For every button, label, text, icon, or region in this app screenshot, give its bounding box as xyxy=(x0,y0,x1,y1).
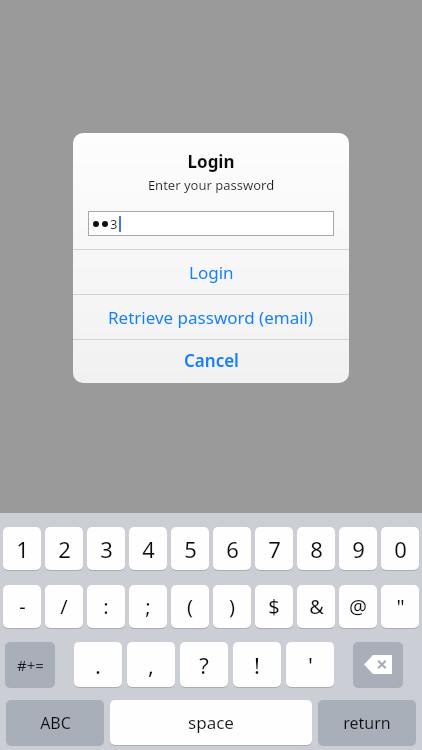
button[interactable]: 9 xyxy=(339,527,377,570)
staticText: Login xyxy=(189,261,234,284)
button[interactable]: 6 xyxy=(213,527,251,570)
button[interactable]: space xyxy=(110,700,312,745)
button[interactable]: ? xyxy=(180,642,228,687)
button[interactable]: Login xyxy=(73,250,349,294)
staticText: $ xyxy=(268,593,280,620)
button[interactable]: 5 xyxy=(171,527,209,570)
staticText: - xyxy=(19,593,26,620)
button[interactable]: 3 xyxy=(88,211,334,236)
staticText: ? xyxy=(199,650,209,680)
button[interactable]: 3 xyxy=(87,527,125,570)
button[interactable]: . xyxy=(74,642,122,687)
staticText: 5 xyxy=(184,534,197,564)
button[interactable]: ) xyxy=(213,585,251,628)
button[interactable]: Retrieve password (email) xyxy=(73,295,349,339)
staticText: . xyxy=(95,650,101,680)
button[interactable]: ABC xyxy=(6,700,104,745)
button[interactable]: @ xyxy=(339,585,377,628)
staticText: & xyxy=(309,593,324,620)
staticText: ! xyxy=(254,650,260,680)
staticText: 8 xyxy=(310,534,323,564)
button[interactable]: " xyxy=(381,585,419,628)
staticText: " xyxy=(396,593,405,620)
button[interactable]: $ xyxy=(255,585,293,628)
staticText: 3 xyxy=(110,215,118,233)
button[interactable]: 1 xyxy=(3,527,41,570)
button[interactable]: ' xyxy=(286,642,334,687)
button[interactable]: 0 xyxy=(381,527,419,570)
staticText: , xyxy=(148,650,154,680)
staticText: 4 xyxy=(142,534,155,564)
button[interactable]: 2 xyxy=(45,527,83,570)
button[interactable]: #+= xyxy=(5,642,55,687)
button[interactable]: 4 xyxy=(129,527,167,570)
staticText: return xyxy=(343,712,391,734)
button[interactable]: 7 xyxy=(255,527,293,570)
staticText: ; xyxy=(145,593,151,620)
staticText: / xyxy=(60,593,68,620)
staticText: 2 xyxy=(58,534,71,564)
staticText: 9 xyxy=(352,534,365,564)
button[interactable]: / xyxy=(45,585,83,628)
staticText: ( xyxy=(187,593,193,620)
staticText: Cancel xyxy=(184,349,239,372)
staticText: ) xyxy=(229,593,235,620)
staticText: 3 xyxy=(100,534,113,564)
button[interactable]: ( xyxy=(171,585,209,628)
staticText: #+= xyxy=(17,655,44,675)
staticText: ' xyxy=(308,650,313,680)
button[interactable]: 8 xyxy=(297,527,335,570)
button[interactable]: Cancel xyxy=(73,340,349,380)
staticText: 1 xyxy=(16,534,29,564)
button[interactable]: : xyxy=(87,585,125,628)
button[interactable]: , xyxy=(127,642,175,687)
staticText: Enter your password xyxy=(73,176,349,194)
staticText: @ xyxy=(349,593,367,620)
staticText: 0 xyxy=(394,534,407,564)
button[interactable]: - xyxy=(3,585,41,628)
staticText: : xyxy=(103,593,109,620)
staticText: 7 xyxy=(268,534,281,564)
button[interactable]: Delete xyxy=(353,642,403,687)
staticText: Retrieve password (email) xyxy=(108,306,314,329)
staticText: ABC xyxy=(40,712,71,734)
staticText: 6 xyxy=(226,534,239,564)
button[interactable]: ! xyxy=(233,642,281,687)
button[interactable]: return xyxy=(318,700,416,745)
staticText: Login xyxy=(73,150,349,173)
button[interactable]: & xyxy=(297,585,335,628)
staticText: space xyxy=(188,711,234,734)
button[interactable]: ; xyxy=(129,585,167,628)
